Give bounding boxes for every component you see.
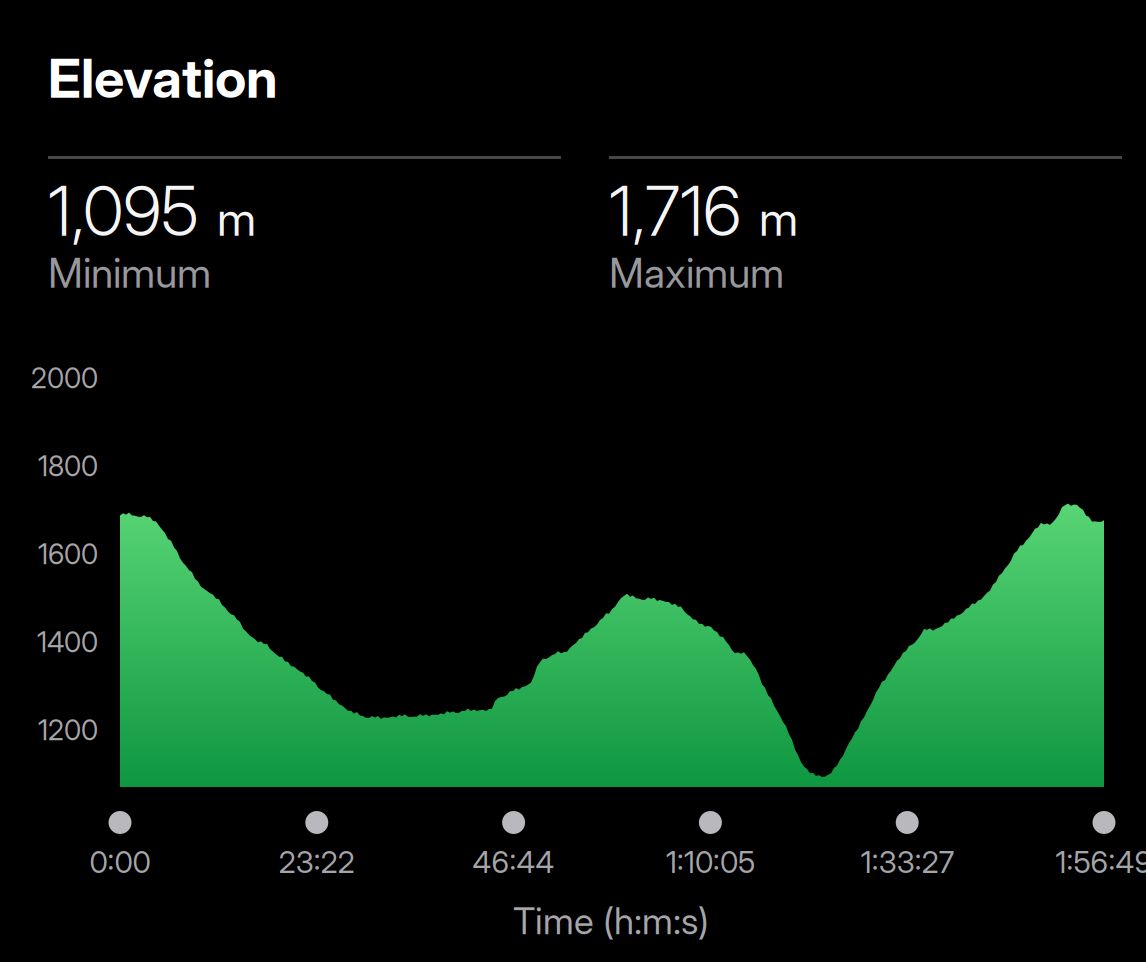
- staticText: 1,095: [48, 170, 199, 252]
- button[interactable]: Minimum elevation 1,095 metres: [48, 154, 561, 314]
- staticText: Maximum: [609, 248, 784, 298]
- staticText: m: [217, 190, 256, 247]
- staticText: 1200: [38, 713, 98, 747]
- staticText: 1:10:05: [666, 844, 755, 880]
- staticText: Elevation: [48, 45, 278, 111]
- staticText: m: [759, 190, 798, 247]
- staticText: 2000: [31, 361, 98, 395]
- staticText: 1800: [38, 449, 98, 483]
- staticText: 1:33:27: [861, 844, 954, 880]
- staticText: 1600: [38, 537, 98, 571]
- staticText: 1,716: [609, 170, 741, 252]
- staticText: 23:22: [279, 844, 355, 880]
- staticText: Minimum: [48, 248, 211, 298]
- staticText: 0:00: [89, 844, 150, 880]
- staticText: 1:56:49: [1055, 844, 1146, 880]
- staticText: 1400: [37, 625, 98, 659]
- staticText: Time (h:m:s): [513, 899, 709, 943]
- staticText: 46:44: [473, 844, 555, 880]
- button[interactable]: Maximum elevation 1,716 metres: [609, 154, 1122, 314]
